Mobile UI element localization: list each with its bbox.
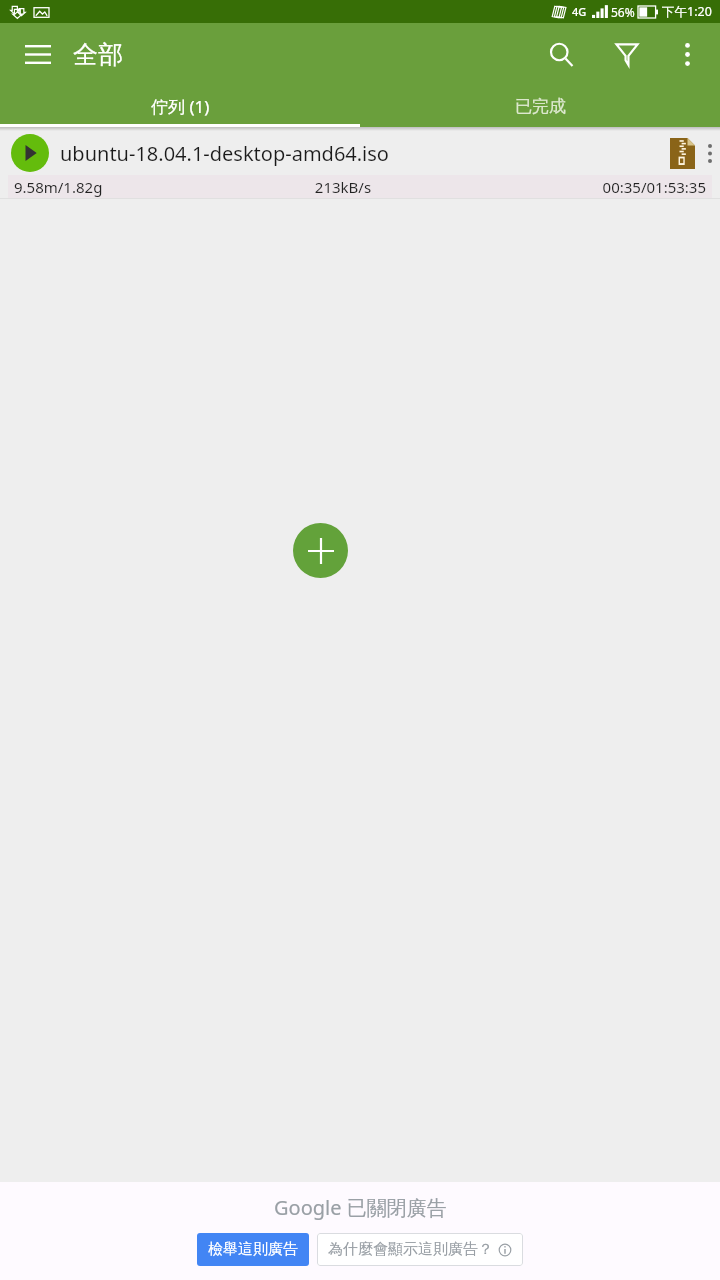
staticText: 佇列 (1) [151,95,210,118]
staticText: ubuntu-18.04.1-desktop-amd64.iso [60,140,389,167]
button[interactable]: Pause or resume [11,134,49,172]
button[interactable]: Add download [293,523,348,578]
staticText: 檢舉這則廣告 [208,1240,298,1259]
staticText: 下午1:20 [662,3,712,20]
button[interactable]: Item options [700,133,720,173]
button[interactable]: 已完成 [360,85,720,127]
staticText: 為什麼會顯示這則廣告？ [328,1240,493,1259]
staticText: 4G [572,4,587,19]
button[interactable]: 檢舉這則廣告 [197,1233,309,1266]
button[interactable]: Filter [604,31,650,77]
staticText: 9.58m/1.82g [14,177,233,197]
staticText: 00:35/01:53:35 [453,177,706,197]
button[interactable]: More options [664,31,710,77]
staticText: 全部 [73,39,123,70]
button[interactable]: Pause or resume [0,131,720,199]
staticText: 已完成 [515,96,566,117]
button[interactable]: 為什麼會顯示這則廣告？ [317,1233,523,1266]
staticText: 213kB/s [233,177,453,197]
button[interactable]: Navigation menu [17,33,59,75]
staticText: Google 已關閉廣告 [274,1194,447,1221]
button[interactable]: 佇列 (1) [0,85,360,127]
staticText: 56% [611,4,635,20]
button[interactable]: Search [538,31,584,77]
